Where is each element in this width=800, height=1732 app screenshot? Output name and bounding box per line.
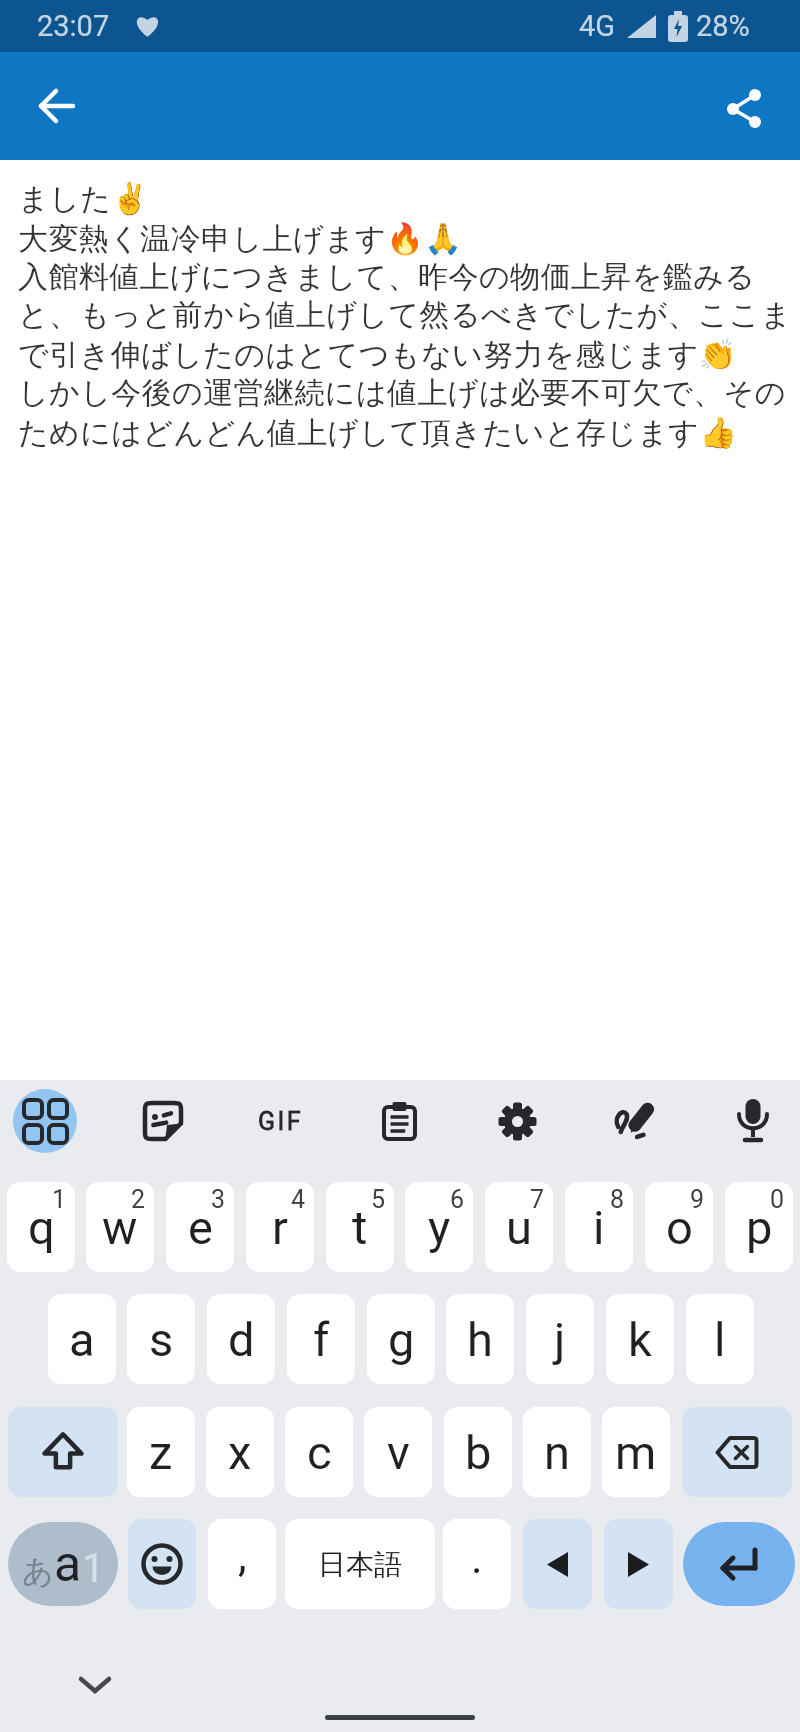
staticText: m <box>615 1425 657 1480</box>
button[interactable] <box>358 1080 440 1162</box>
button[interactable]: l <box>686 1294 754 1384</box>
button[interactable]: o <box>645 1182 713 1272</box>
button[interactable]: d <box>207 1294 275 1384</box>
button[interactable]: c <box>285 1407 353 1497</box>
staticText: x <box>228 1425 252 1480</box>
button[interactable]: i <box>565 1182 633 1272</box>
button[interactable] <box>683 1522 795 1606</box>
button[interactable]: e <box>166 1182 234 1272</box>
staticText: , <box>238 1530 247 1582</box>
button[interactable]: b <box>444 1407 512 1497</box>
staticText: z <box>149 1425 173 1480</box>
staticText: 8 <box>610 1185 625 1214</box>
staticText: 5 <box>371 1185 386 1214</box>
staticText: e <box>188 1200 213 1255</box>
staticText: v <box>387 1425 410 1480</box>
button[interactable]: GIF <box>240 1080 322 1162</box>
button[interactable]: , <box>208 1519 276 1609</box>
button[interactable]: j <box>526 1294 594 1384</box>
staticText: ました✌️ 大変熱く温冷申し上げます🔥🙏 入館料値上げにつきまして、昨今の物価上… <box>18 180 792 452</box>
staticText: k <box>628 1312 652 1367</box>
staticText: 4 <box>291 1185 306 1214</box>
button[interactable]: f <box>287 1294 355 1384</box>
staticText: . <box>471 1532 483 1584</box>
staticText: 28% <box>696 9 750 43</box>
button[interactable]: u <box>485 1182 553 1272</box>
staticText: 2 <box>131 1185 146 1214</box>
staticText: o <box>666 1200 693 1255</box>
staticText: d <box>228 1312 255 1367</box>
staticText: y <box>428 1200 451 1255</box>
staticText: 23:07 <box>37 9 110 43</box>
button[interactable]: r <box>246 1182 314 1272</box>
button[interactable]: . <box>443 1519 511 1609</box>
staticText: 日本語 <box>318 1547 402 1582</box>
staticText: GIF <box>258 1107 304 1136</box>
button[interactable]: y <box>405 1182 473 1272</box>
button[interactable] <box>122 1080 204 1162</box>
button[interactable] <box>65 1655 125 1715</box>
button[interactable]: あ <box>8 1522 118 1606</box>
staticText: h <box>467 1312 493 1367</box>
button[interactable] <box>712 1080 794 1162</box>
button[interactable] <box>716 78 772 134</box>
button[interactable]: t <box>326 1182 394 1272</box>
button[interactable] <box>13 1089 77 1153</box>
staticText: q <box>28 1200 55 1255</box>
button[interactable]: a <box>48 1294 116 1384</box>
staticText: 1 <box>52 1185 67 1214</box>
staticText: j <box>554 1312 566 1367</box>
staticText: p <box>746 1200 773 1255</box>
button[interactable]: x <box>206 1407 274 1497</box>
button[interactable]: v <box>364 1407 432 1497</box>
button[interactable] <box>28 77 86 135</box>
staticText: 9 <box>690 1185 705 1214</box>
staticText: t <box>352 1200 368 1255</box>
staticText: 0 <box>770 1185 785 1214</box>
staticText: f <box>313 1312 330 1367</box>
button[interactable] <box>128 1519 196 1609</box>
button[interactable] <box>8 1407 118 1497</box>
button[interactable]: g <box>367 1294 435 1384</box>
staticText: a <box>54 1535 82 1594</box>
staticText: n <box>544 1425 570 1480</box>
staticText: l <box>714 1312 726 1367</box>
staticText: c <box>307 1425 332 1480</box>
staticText: r <box>272 1200 288 1255</box>
button[interactable]: m <box>602 1407 670 1497</box>
staticText: 6 <box>450 1185 465 1214</box>
button[interactable] <box>604 1519 673 1609</box>
staticText: 4G <box>579 9 616 43</box>
button[interactable]: h <box>446 1294 514 1384</box>
button[interactable]: w <box>86 1182 154 1272</box>
staticText: w <box>102 1200 138 1255</box>
staticText: g <box>388 1312 415 1367</box>
button[interactable]: z <box>127 1407 195 1497</box>
staticText: 3 <box>211 1185 226 1214</box>
button[interactable]: n <box>523 1407 591 1497</box>
button[interactable] <box>682 1407 792 1497</box>
staticText: s <box>149 1312 174 1367</box>
staticText: a <box>69 1312 95 1367</box>
staticText: i <box>593 1200 605 1255</box>
staticText: あ <box>22 1552 54 1591</box>
staticText: b <box>465 1425 492 1480</box>
button[interactable]: p <box>725 1182 793 1272</box>
button[interactable]: s <box>127 1294 195 1384</box>
staticText: 1 <box>82 1545 105 1592</box>
button[interactable]: 日本語 <box>285 1519 435 1609</box>
staticText: 7 <box>530 1185 545 1214</box>
button[interactable] <box>523 1519 592 1609</box>
staticText: u <box>506 1200 532 1255</box>
button[interactable]: q <box>7 1182 75 1272</box>
button[interactable] <box>594 1080 676 1162</box>
button[interactable]: k <box>606 1294 674 1384</box>
button[interactable] <box>476 1080 558 1162</box>
